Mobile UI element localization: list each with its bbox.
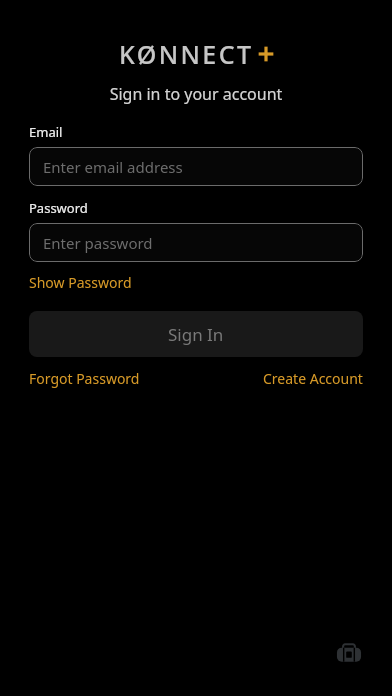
staticText: KØNNECT xyxy=(119,37,254,71)
staticText: Forgot Password xyxy=(29,369,140,388)
button[interactable]: Sign In xyxy=(29,311,363,357)
staticText: Sign In xyxy=(168,323,224,346)
staticText: Sign in to your account xyxy=(0,83,392,105)
staticText: Enter password xyxy=(43,233,153,253)
staticText: Email xyxy=(29,123,63,141)
button[interactable]: Enter email address xyxy=(29,147,363,186)
button[interactable]: Forgot Password xyxy=(29,366,140,391)
button[interactable]: Support tools xyxy=(334,638,364,668)
staticText: Create Account xyxy=(263,369,363,388)
button[interactable]: Create Account xyxy=(263,366,363,391)
staticText: Password xyxy=(29,199,88,217)
staticText: Enter email address xyxy=(43,157,183,177)
button[interactable]: Enter password xyxy=(29,223,363,262)
button[interactable]: Show Password xyxy=(29,271,132,294)
staticText: Show Password xyxy=(29,273,132,292)
